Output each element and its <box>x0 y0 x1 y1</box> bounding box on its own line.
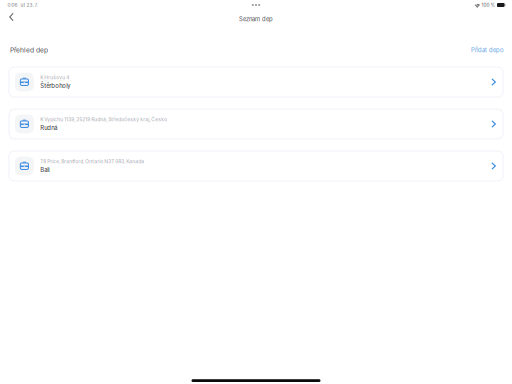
staticText: Přehled dep <box>10 46 48 54</box>
button[interactable]: K Hrušovu 4 <box>9 67 503 97</box>
staticText: 0:06 út 23. 7. <box>7 2 37 8</box>
button[interactable]: Back <box>0 11 21 27</box>
staticText: Bali <box>40 166 49 173</box>
button[interactable]: 78 Price, Brantford, Ontario N3T 0R3, Ka… <box>9 151 503 181</box>
staticText: Seznam dep <box>239 15 273 23</box>
staticText: Přidat depo <box>471 46 504 54</box>
button[interactable]: K Vypichu 1139, 25219 Rudná, Středočeský… <box>9 109 503 139</box>
staticText: 100 % <box>481 2 495 8</box>
staticText: K Vypichu 1139, 25219 Rudná, Středočeský… <box>40 116 167 122</box>
staticText: Rudná <box>40 124 57 131</box>
staticText: 78 Price, Brantford, Ontario N3T 0R3, Ka… <box>40 158 144 164</box>
staticText: K Hrušovu 4 <box>40 74 69 80</box>
staticText: Štěrboholy <box>40 82 70 89</box>
button[interactable]: Přidat depo <box>471 46 512 54</box>
